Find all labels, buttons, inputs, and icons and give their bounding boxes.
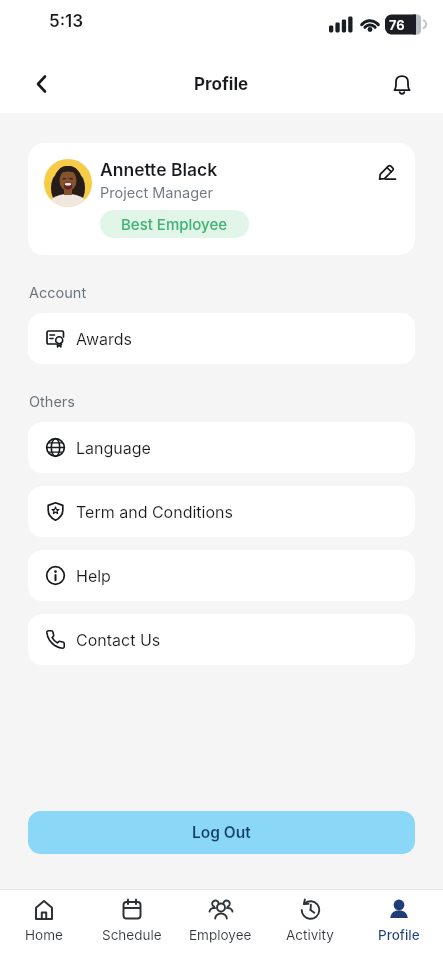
staticText: Best Employee bbox=[121, 215, 228, 233]
button[interactable]: Help bbox=[28, 550, 415, 601]
button[interactable]: Activity bbox=[265, 890, 354, 960]
button[interactable]: Schedule bbox=[88, 890, 176, 960]
button[interactable]: Log Out bbox=[28, 811, 415, 854]
staticText: Awards bbox=[76, 329, 133, 348]
button[interactable] bbox=[369, 153, 405, 189]
button[interactable] bbox=[24, 66, 60, 102]
button[interactable]: Profile bbox=[354, 890, 443, 960]
staticText: 76 bbox=[389, 17, 405, 33]
button[interactable]: Awards bbox=[28, 313, 415, 364]
staticText: Others bbox=[29, 393, 75, 411]
staticText: Account bbox=[29, 284, 87, 302]
staticText: Help bbox=[76, 566, 111, 585]
staticText: Activity bbox=[286, 927, 334, 943]
button[interactable]: Employee bbox=[176, 890, 265, 960]
button[interactable] bbox=[384, 66, 420, 102]
button[interactable]: Term and Conditions bbox=[28, 486, 415, 537]
staticText: Profile bbox=[194, 74, 249, 95]
staticText: Employee bbox=[189, 927, 252, 943]
staticText: Home bbox=[25, 927, 63, 943]
staticText: Language bbox=[76, 438, 151, 457]
button[interactable]: Contact Us bbox=[28, 614, 415, 665]
button[interactable]: Home bbox=[0, 890, 88, 960]
staticText: Contact Us bbox=[76, 630, 161, 649]
staticText: Term and Conditions bbox=[76, 502, 233, 521]
button[interactable]: Annette Black bbox=[28, 143, 415, 255]
staticText: 5:13 bbox=[49, 11, 84, 32]
staticText: Profile bbox=[378, 927, 420, 943]
staticText: Project Manager bbox=[100, 184, 213, 202]
staticText: Log Out bbox=[192, 823, 251, 842]
staticText: Schedule bbox=[102, 927, 162, 943]
staticText: Annette Black bbox=[100, 159, 218, 180]
button[interactable]: Language bbox=[28, 422, 415, 473]
